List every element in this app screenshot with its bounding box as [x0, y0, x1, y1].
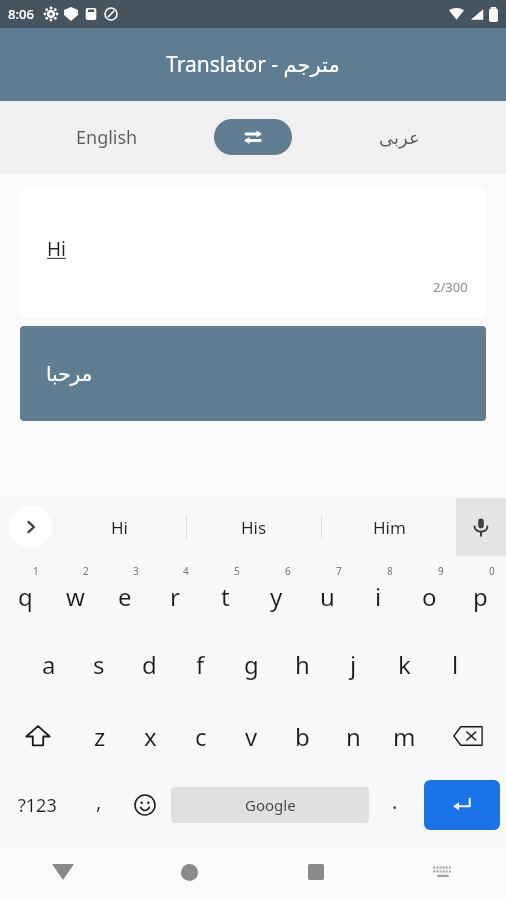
staticText: . — [392, 788, 398, 815]
staticText: Hi — [47, 236, 66, 262]
button[interactable]: g — [226, 628, 277, 700]
button[interactable]: c — [175, 700, 226, 772]
button[interactable]: Hi — [52, 498, 186, 556]
staticText: 7 — [336, 564, 342, 578]
staticText: 8:06 — [8, 5, 34, 23]
staticText: t — [221, 580, 230, 613]
staticText: z — [94, 720, 106, 753]
button[interactable]: z — [75, 700, 125, 772]
staticText: k — [398, 648, 411, 681]
button[interactable]: k — [379, 628, 430, 700]
staticText: 2/300 — [433, 278, 468, 296]
staticText: 8 — [387, 564, 393, 578]
button[interactable]: Enter — [424, 780, 500, 830]
button[interactable]: r — [150, 556, 200, 628]
staticText: Him — [373, 516, 406, 539]
staticText: 0 — [489, 564, 495, 578]
button[interactable]: j — [328, 628, 379, 700]
staticText: 1 — [33, 564, 39, 578]
staticText: i — [375, 580, 382, 613]
button[interactable]: u — [302, 556, 353, 628]
staticText: o — [422, 580, 437, 613]
button[interactable]: n — [328, 700, 379, 772]
staticText: English — [76, 125, 138, 150]
button[interactable]: a — [24, 628, 74, 700]
button[interactable]: p — [455, 556, 506, 628]
button[interactable]: y — [251, 556, 302, 628]
button[interactable]: d — [124, 628, 175, 700]
staticText: 2 — [83, 564, 89, 578]
staticText: f — [196, 648, 205, 681]
staticText: l — [452, 648, 459, 681]
button[interactable]: Swap languages — [214, 119, 292, 155]
staticText: e — [118, 580, 132, 613]
button[interactable]: Emoji — [122, 772, 168, 838]
button[interactable]: Recent apps — [252, 844, 379, 900]
staticText: d — [142, 648, 157, 681]
staticText: Translator - مترجم — [166, 50, 340, 79]
staticText: x — [144, 720, 157, 753]
button[interactable]: q — [0, 556, 50, 628]
staticText: m — [393, 720, 416, 753]
button[interactable]: x — [125, 700, 175, 772]
button[interactable]: Voice input — [456, 498, 506, 556]
button[interactable]: Change keyboard — [379, 844, 506, 900]
staticText: 5 — [234, 564, 240, 578]
staticText: u — [320, 580, 335, 613]
button[interactable]: His — [187, 498, 321, 556]
button[interactable]: Google — [171, 787, 369, 823]
staticText: مرحبا — [46, 362, 93, 385]
button[interactable]: Him — [322, 498, 456, 556]
staticText: v — [245, 720, 258, 753]
staticText: 3 — [133, 564, 139, 578]
button[interactable]: s — [74, 628, 124, 700]
button[interactable]: More suggestions — [10, 506, 52, 548]
button[interactable]: ?123 — [0, 772, 75, 838]
staticText: j — [350, 648, 357, 681]
staticText: w — [66, 580, 85, 613]
button[interactable]: h — [277, 628, 328, 700]
button[interactable]: i — [353, 556, 404, 628]
button[interactable]: f — [175, 628, 226, 700]
button[interactable]: English — [0, 125, 214, 150]
staticText: , — [96, 788, 102, 815]
button[interactable]: t — [200, 556, 251, 628]
staticText: 4 — [183, 564, 189, 578]
button[interactable]: مرحبا — [20, 326, 486, 421]
button[interactable]: o — [404, 556, 455, 628]
staticText: h — [295, 648, 310, 681]
button[interactable]: Home — [126, 844, 252, 900]
staticText: عربى — [379, 127, 420, 148]
button[interactable]: m — [379, 700, 430, 772]
button[interactable]: عربى — [292, 127, 506, 148]
button[interactable]: Hi — [20, 188, 486, 318]
staticText: g — [244, 648, 259, 681]
staticText: Google — [245, 795, 296, 815]
staticText: y — [270, 580, 283, 613]
button[interactable]: b — [277, 700, 328, 772]
button[interactable]: e — [100, 556, 150, 628]
staticText: r — [170, 580, 180, 613]
staticText: p — [473, 580, 488, 613]
staticText: ?123 — [18, 793, 57, 818]
button[interactable]: w — [50, 556, 100, 628]
staticText: His — [241, 516, 267, 539]
button[interactable]: v — [226, 700, 277, 772]
staticText: a — [42, 648, 56, 681]
button[interactable]: Shift — [0, 700, 75, 772]
staticText: b — [295, 720, 310, 753]
staticText: c — [195, 720, 207, 753]
button[interactable]: Back — [0, 844, 126, 900]
button[interactable]: Backspace — [430, 700, 506, 772]
staticText: s — [93, 648, 105, 681]
staticText: 6 — [285, 564, 291, 578]
button[interactable]: l — [430, 628, 481, 700]
staticText: n — [346, 720, 361, 753]
staticText: q — [18, 580, 33, 613]
button[interactable]: . — [372, 772, 418, 838]
staticText: 9 — [438, 564, 444, 578]
staticText: Hi — [111, 516, 128, 539]
button[interactable]: , — [75, 772, 122, 838]
